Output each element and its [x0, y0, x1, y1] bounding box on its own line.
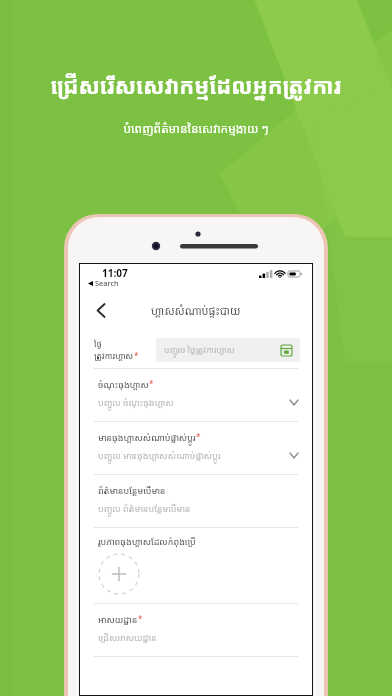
button[interactable]: Back	[88, 297, 114, 323]
staticText: *	[134, 350, 139, 361]
button[interactable]: ចំណុះធុងហ្គាស	[80, 369, 312, 421]
staticText: បញ្ចូល មានធុងហ្គាសសំណាប់ផ្លាស់ប្តូរ	[98, 449, 290, 461]
staticText: បញ្ចូល ព័ត៌មានបន្ថែមបើមាន	[98, 502, 298, 514]
staticText: ចំណុះធុងហ្គាស	[98, 378, 149, 390]
staticText: ជ្រើសរើសសេវាកម្មដែលអ្នកត្រូវការ	[50, 70, 342, 100]
button[interactable]: Add photo	[98, 553, 140, 595]
staticText: *	[138, 613, 143, 624]
button[interactable]: មានធុងហ្គាសសំណាប់ផ្លាស់ប្តូរ	[80, 422, 312, 474]
staticText: ហ្គាសសំណាប់ផ្ទះបាយ	[151, 303, 241, 318]
staticText: *	[196, 431, 201, 442]
button[interactable]: ព័ត៌មានបន្ថែមបើមាន	[80, 475, 312, 527]
staticText: Search	[95, 278, 119, 288]
staticText: បំពេញព័ត៌មាននៃសេវាកម្មងាយ ៗ	[123, 120, 269, 136]
staticText: បញ្ចូល ចំណុះធុងហ្គាស	[98, 396, 290, 408]
staticText: បញ្ចូល ថ្ងៃត្រូវការហ្គាស	[164, 344, 281, 356]
staticText: រូបភាពធុងហ្គាសដែលកំពុងប្រើ	[98, 535, 196, 547]
button[interactable]: ថ្ងៃ	[80, 334, 312, 368]
staticText: *	[149, 378, 154, 389]
staticText: អាសយដ្ឋាន	[98, 613, 138, 625]
staticText: ថ្ងៃ	[94, 338, 102, 350]
staticText: ត្រូវការហ្គាស	[94, 350, 134, 362]
staticText: ព័ត៌មានបន្ថែមបើមាន	[98, 484, 166, 496]
staticText: ជ្រើសអាសយដ្ឋាន	[98, 631, 298, 643]
button[interactable]: អាសយដ្ឋាន	[80, 604, 312, 656]
staticText: 11:07	[102, 266, 128, 280]
staticText: មានធុងហ្គាសសំណាប់ផ្លាស់ប្តូរ	[98, 431, 196, 443]
